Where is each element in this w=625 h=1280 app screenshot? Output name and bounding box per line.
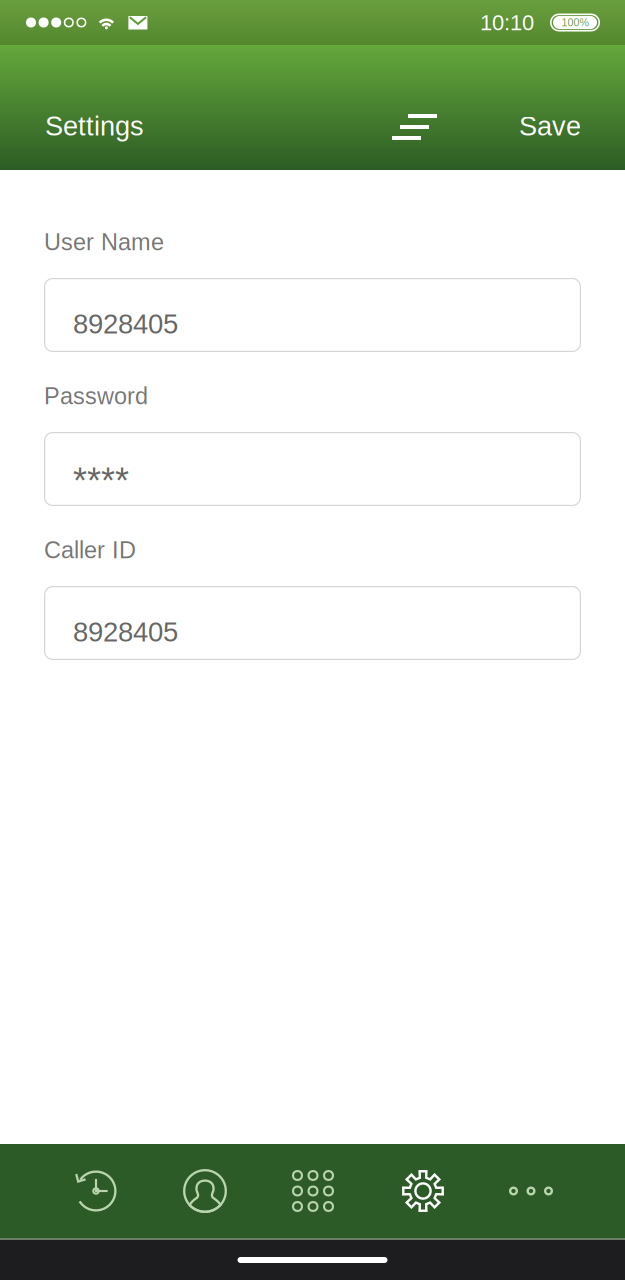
button[interactable]: Contacts: [183, 1169, 227, 1213]
button[interactable]: Recents: [74, 1169, 118, 1213]
button[interactable]: Sort: [378, 102, 451, 152]
staticText: ****: [73, 461, 129, 501]
button[interactable]: Save: [513, 103, 587, 149]
staticText: 8928405: [73, 309, 178, 339]
staticText: 100%: [561, 16, 588, 28]
staticText: Settings: [45, 111, 144, 141]
button[interactable]: ****: [44, 432, 581, 506]
button[interactable]: 8928405: [44, 586, 581, 660]
button[interactable]: More: [509, 1169, 553, 1213]
staticText: 8928405: [73, 617, 178, 647]
button[interactable]: Settings: [401, 1169, 445, 1213]
staticText: Caller ID: [44, 537, 136, 563]
staticText: User Name: [44, 229, 164, 255]
staticText: Save: [519, 111, 581, 141]
staticText: Password: [44, 383, 148, 409]
button[interactable]: 8928405: [44, 278, 581, 352]
button[interactable]: Keypad: [291, 1169, 335, 1213]
staticText: 10:10: [480, 10, 534, 35]
